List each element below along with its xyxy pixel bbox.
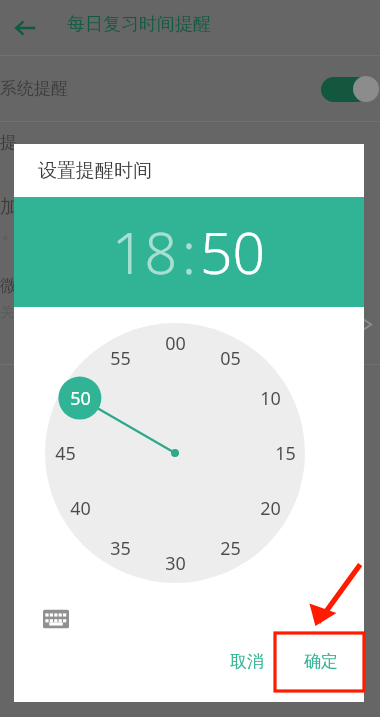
staticText: 10 [260, 386, 281, 411]
staticText: 取消 [230, 651, 264, 672]
staticText: 设置提醒时间 [38, 159, 152, 183]
button[interactable]: 50 [200, 213, 266, 291]
button[interactable]: 确定 [280, 643, 362, 680]
staticText: 关 [0, 304, 14, 322]
button[interactable]: 00 [45, 323, 305, 583]
staticText: 50 [70, 386, 91, 411]
staticText: : [182, 213, 196, 291]
staticText: 提 [0, 132, 17, 153]
staticText: 25 [220, 536, 241, 561]
staticText: 微 [0, 275, 17, 296]
button[interactable]: 18 [112, 213, 178, 291]
staticText: 18 [112, 213, 178, 291]
staticText: 00 [165, 331, 186, 356]
button[interactable]: 系统提醒 [0, 56, 380, 121]
staticText: 50 [200, 213, 266, 291]
button[interactable]: 取消 [214, 643, 280, 680]
staticText: 加 [0, 195, 19, 219]
button[interactable]: Back [8, 11, 42, 45]
staticText: 55 [110, 346, 131, 371]
staticText: 45 [55, 441, 76, 466]
staticText: 35 [110, 536, 131, 561]
staticText: 40 [70, 496, 91, 521]
staticText: 确定 [304, 651, 338, 672]
staticText: 15 [275, 441, 296, 466]
staticText: 30 [165, 551, 186, 576]
staticText: 20 [260, 496, 281, 521]
button[interactable]: Switch to keyboard input [38, 601, 74, 637]
staticText: 系统提醒 [0, 78, 68, 99]
staticText: 每日复习时间提醒 [67, 13, 211, 36]
staticText: 05 [220, 346, 241, 371]
